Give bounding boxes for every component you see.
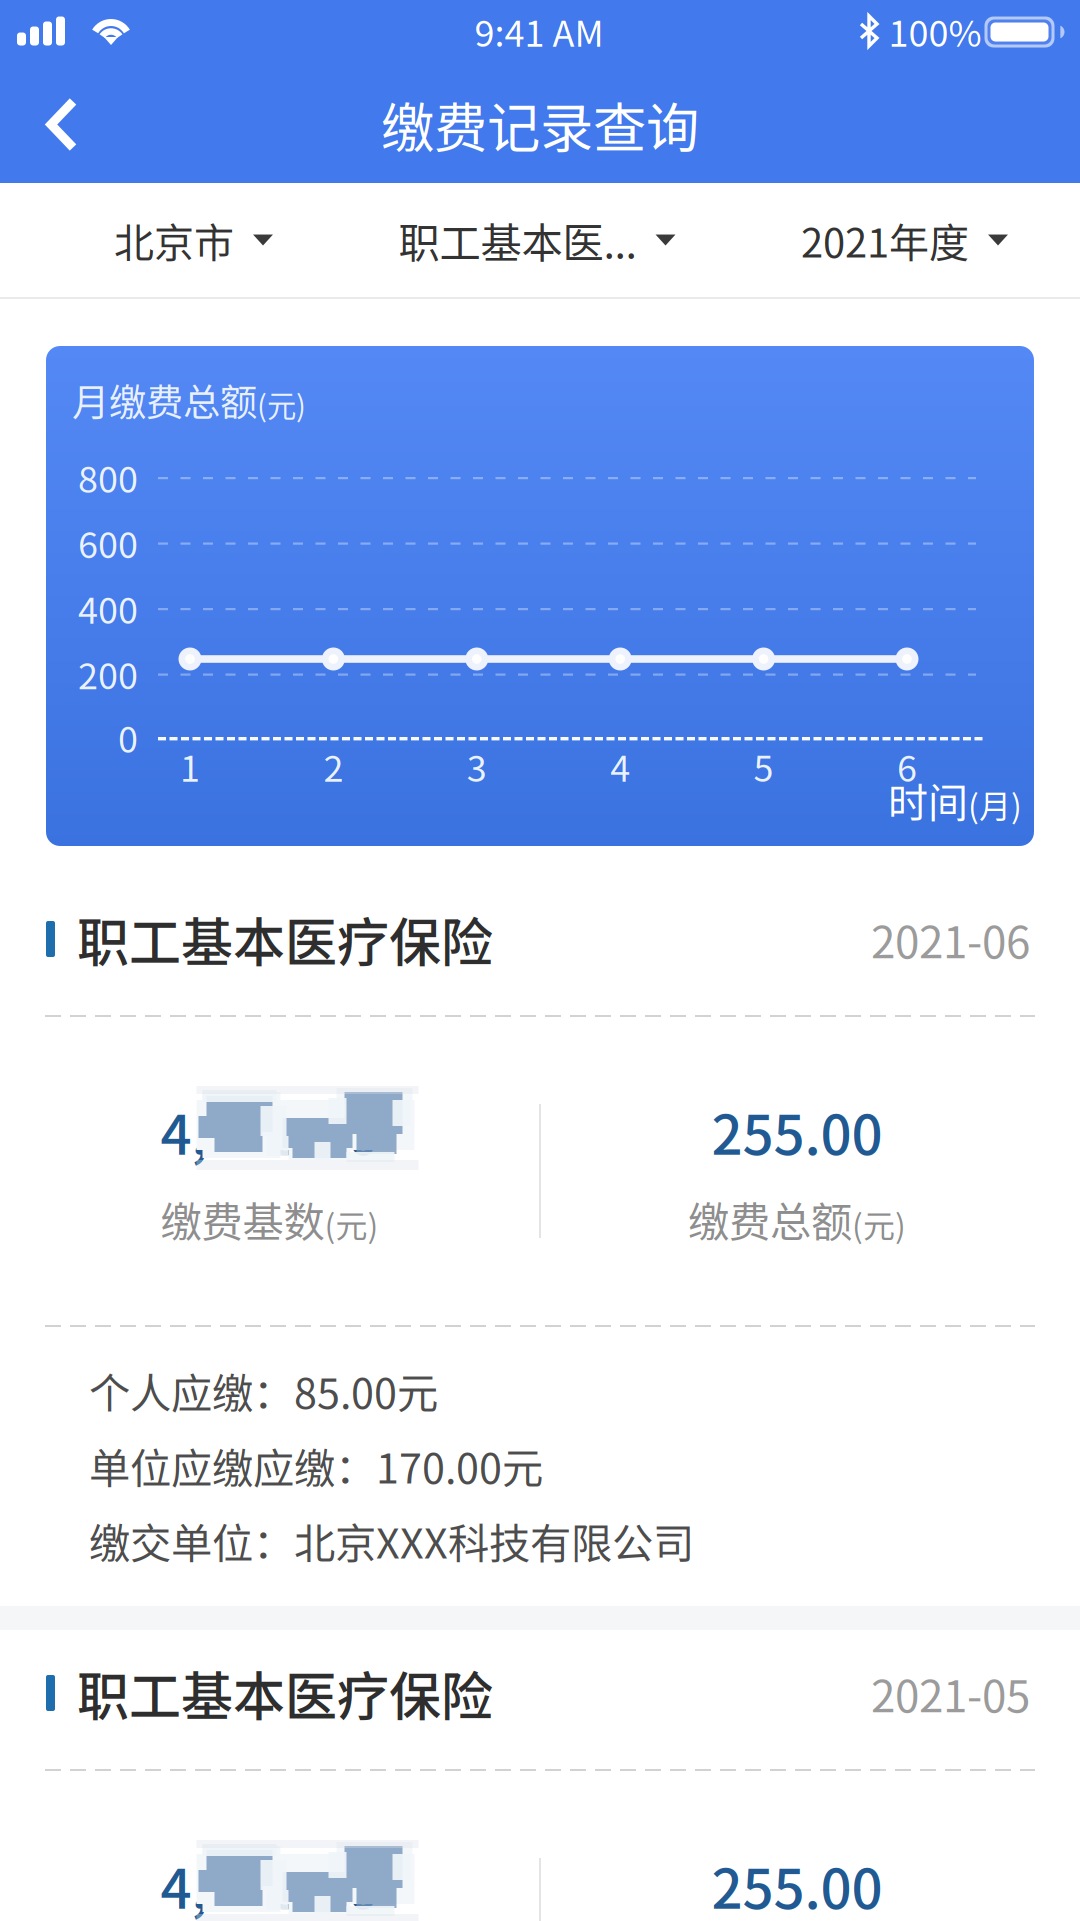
staticText: 单位应缴应缴：170.00元: [89, 1436, 543, 1495]
staticText: 2: [323, 740, 343, 792]
staticText: 255.00: [711, 1845, 882, 1921]
staticText: 800: [78, 451, 138, 503]
button[interactable]: 北京市: [114, 183, 273, 297]
staticText: 时间(月): [888, 772, 1022, 828]
staticText: 4,000.00: [160, 1091, 378, 1171]
staticText: 2021年度: [801, 211, 969, 269]
staticText: 9:41 AM: [474, 5, 603, 57]
staticText: 4: [610, 740, 630, 792]
staticText: 缴费记录查询: [381, 86, 699, 163]
staticText: 4,000.00: [160, 1845, 378, 1921]
staticText: 月缴费总额(元): [72, 374, 306, 426]
staticText: 2021-05: [871, 1661, 1030, 1725]
staticText: 600: [78, 516, 138, 568]
staticText: 400: [78, 582, 138, 634]
staticText: 6: [897, 740, 917, 792]
button[interactable]: 返回: [0, 66, 124, 183]
staticText: 100%: [888, 5, 981, 57]
staticText: 缴费总额(元): [688, 1190, 906, 1248]
staticText: 1: [180, 740, 200, 792]
staticText: 200: [78, 647, 138, 699]
staticText: 0: [118, 711, 138, 763]
staticText: 职工基本医...: [398, 210, 636, 270]
staticText: 个人应缴：85.00元: [89, 1361, 438, 1420]
staticText: 2021-06: [871, 907, 1030, 971]
staticText: 3: [467, 740, 487, 792]
staticText: 缴交单位：北京XXX科技有限公司: [89, 1511, 694, 1570]
staticText: 5: [754, 740, 774, 792]
button[interactable]: 2021年度: [801, 183, 1008, 297]
staticText: 缴费基数(元): [160, 1190, 378, 1248]
button[interactable]: 职工基本医...: [398, 183, 675, 297]
staticText: 255.00: [711, 1091, 882, 1171]
staticText: 职工基本医疗保险: [77, 901, 493, 977]
staticText: 职工基本医疗保险: [77, 1655, 493, 1731]
staticText: 北京市: [114, 211, 234, 269]
